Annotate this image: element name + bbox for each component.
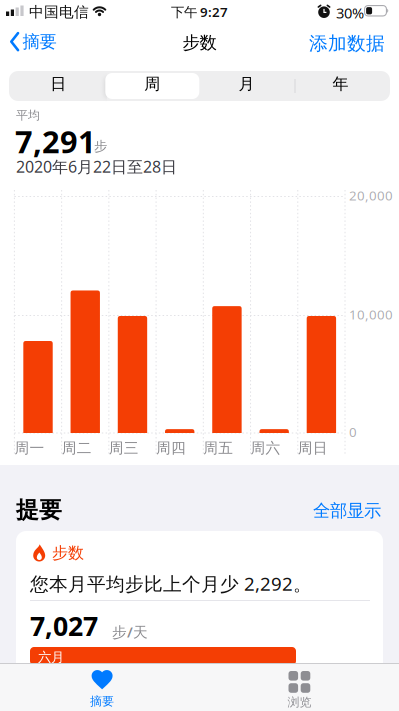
staticText: 步/天 bbox=[112, 622, 148, 641]
button[interactable]: 摘要 bbox=[0, 21, 46, 42]
staticText: 提要 bbox=[16, 496, 62, 524]
staticText: 周一 bbox=[14, 439, 44, 457]
button[interactable]: 年 bbox=[293, 71, 387, 101]
staticText: 浏览 bbox=[287, 695, 311, 710]
button[interactable]: 摘要 bbox=[42, 663, 162, 711]
staticText: 20,000 bbox=[349, 186, 393, 204]
staticText: 摘要 bbox=[22, 31, 56, 52]
staticText: 全部显示 bbox=[313, 500, 381, 521]
button[interactable]: 全部显示 bbox=[313, 500, 381, 521]
button[interactable]: 月 bbox=[199, 71, 293, 101]
staticText: 周二 bbox=[62, 439, 92, 457]
staticText: 步数 bbox=[182, 32, 216, 53]
staticText: 年 bbox=[332, 74, 348, 94]
staticText: 30% bbox=[336, 3, 364, 22]
button[interactable]: 浏览 bbox=[239, 663, 359, 711]
button[interactable]: 添加数据 bbox=[309, 32, 385, 55]
staticText: 日 bbox=[50, 74, 66, 94]
staticText: 步 bbox=[94, 138, 107, 154]
staticText: 周 bbox=[144, 74, 160, 94]
staticText: 7,027 bbox=[30, 608, 98, 643]
staticText: 周四 bbox=[156, 439, 186, 457]
staticText: 添加数据 bbox=[309, 32, 385, 55]
staticText: 10,000 bbox=[349, 305, 393, 323]
staticText: 7,291 bbox=[15, 121, 96, 162]
staticText: 下午 9:27 bbox=[171, 3, 228, 21]
button[interactable]: 步数 bbox=[16, 531, 383, 680]
staticText: 2020年6月22日至28日 bbox=[16, 156, 177, 177]
staticText: 0 bbox=[349, 423, 357, 441]
staticText: 周五 bbox=[203, 439, 233, 457]
staticText: 步数 bbox=[52, 543, 84, 563]
staticText: 六月 bbox=[38, 649, 64, 665]
staticText: 中国电信 bbox=[29, 3, 89, 21]
staticText: 周三 bbox=[109, 439, 139, 457]
button[interactable]: 周 bbox=[105, 71, 199, 101]
staticText: 您本月平均步比上个月少 2,292。 bbox=[30, 571, 312, 596]
staticText: 月 bbox=[238, 74, 254, 94]
staticText: 周日 bbox=[298, 439, 328, 457]
button[interactable]: 日 bbox=[11, 71, 105, 101]
staticText: 平均 bbox=[16, 108, 40, 123]
staticText: 周六 bbox=[250, 439, 280, 457]
staticText: 摘要 bbox=[90, 694, 114, 709]
